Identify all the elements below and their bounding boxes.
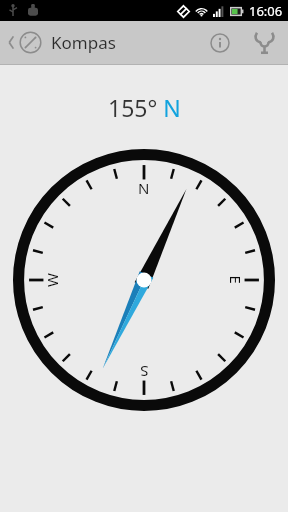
staticText: Kompas [51, 31, 116, 54]
staticText: 155° N [108, 92, 181, 123]
staticText: 16:06 [249, 2, 283, 20]
button[interactable]: Calibrate compass [242, 21, 286, 64]
button[interactable]: Info [198, 21, 242, 64]
button[interactable]: Compass, heading 155 degrees north [12, 148, 276, 412]
other: Back [7, 34, 15, 51]
button[interactable]: Back [0, 21, 126, 64]
